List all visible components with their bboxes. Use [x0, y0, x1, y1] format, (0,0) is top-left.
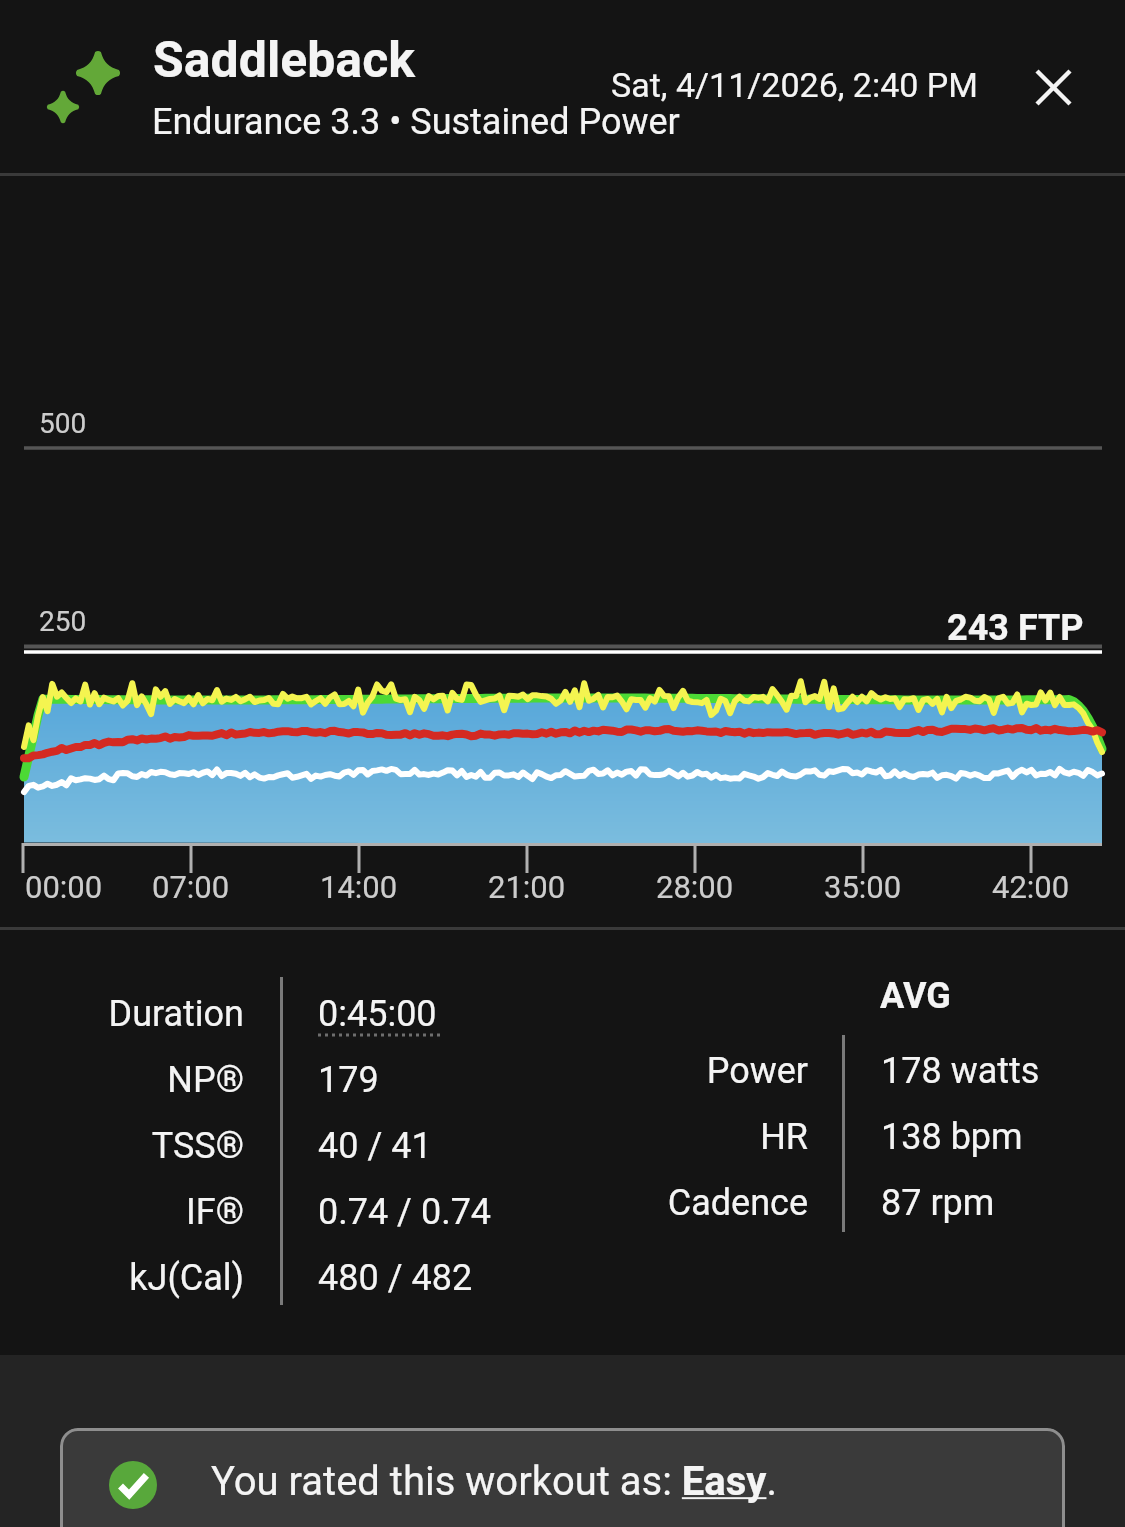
staticText: 28:00: [656, 869, 734, 905]
staticText: 21:00: [488, 869, 566, 905]
staticText: AVG: [880, 975, 951, 1017]
staticText: 179: [318, 1059, 379, 1101]
staticText: Duration: [0, 993, 244, 1035]
staticText: kJ(Cal): [0, 1257, 244, 1299]
staticText: Saddleback: [153, 31, 415, 90]
button[interactable]: You rated this workout as: Easy.: [60, 1428, 1065, 1527]
staticText: Sat, 4/11/2026, 2:40 PM: [611, 65, 978, 105]
staticText: 178 watts: [881, 1050, 1040, 1092]
staticText: IF®: [0, 1191, 244, 1233]
staticText: Cadence: [560, 1182, 808, 1224]
staticText: 35:00: [824, 869, 902, 905]
staticText: Endurance 3.3 • Sustained Power: [152, 101, 680, 143]
staticText: 0.74 / 0.74: [318, 1191, 492, 1233]
staticText: 480 / 482: [318, 1257, 473, 1299]
staticText: 00:00: [25, 869, 103, 905]
staticText: 250: [39, 605, 87, 638]
staticText: 42:00: [992, 869, 1070, 905]
staticText: 0:45:00: [318, 993, 437, 1035]
staticText: You rated this workout as: Easy.: [211, 1458, 778, 1505]
staticText: 500: [39, 407, 87, 440]
staticText: 138 bpm: [881, 1116, 1023, 1158]
staticText: HR: [560, 1116, 808, 1158]
staticText: 07:00: [152, 869, 230, 905]
staticText: 87 rpm: [881, 1182, 995, 1224]
staticText: NP®: [0, 1059, 244, 1101]
button[interactable]: Close: [1005, 39, 1101, 135]
staticText: TSS®: [0, 1125, 244, 1167]
staticText: 40 / 41: [318, 1125, 432, 1167]
staticText: 243 FTP: [947, 607, 1084, 649]
staticText: Power: [560, 1050, 808, 1092]
staticText: 14:00: [320, 869, 398, 905]
